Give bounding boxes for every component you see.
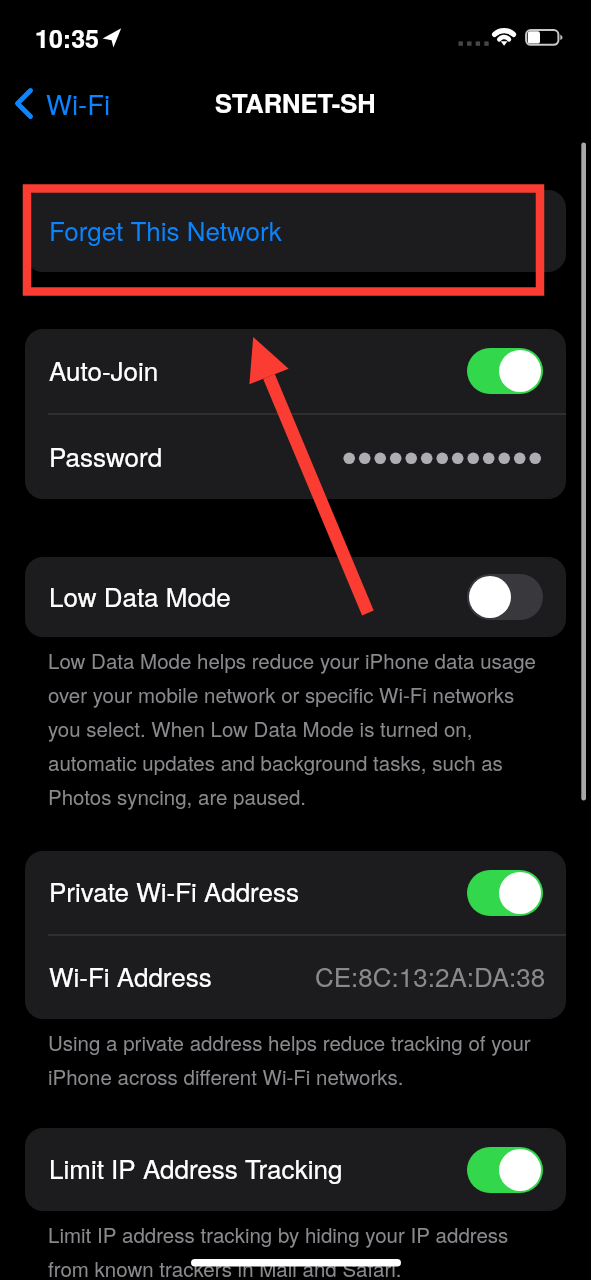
staticText: Forget This Network (49, 211, 282, 248)
staticText: STARNET-SH (215, 84, 376, 121)
button[interactable]: Password (25, 415, 566, 499)
button[interactable]: Auto-Join (25, 329, 566, 413)
staticText: Limit IP address tracking by hiding your… (48, 1219, 543, 1280)
staticText: Wi-Fi Address (49, 957, 212, 994)
staticText: Private Wi-Fi Address (49, 872, 299, 909)
button[interactable]: Forget This Network (25, 190, 566, 272)
button[interactable]: Private Wi-Fi Address toggle, on (467, 870, 543, 916)
button[interactable]: Low Data Mode toggle, off (467, 574, 543, 620)
button[interactable]: Private Wi-Fi Address (25, 851, 566, 934)
staticText: Password (49, 437, 163, 474)
staticText: 10:35 (35, 20, 99, 56)
button[interactable]: Limit IP Address Tracking (25, 1128, 566, 1211)
staticText: Low Data Mode (49, 577, 231, 614)
staticText: Wi-Fi (46, 83, 111, 122)
staticText: Using a private address helps reduce tra… (48, 1027, 543, 1090)
button[interactable]: Wi-Fi Address (25, 936, 566, 1019)
staticText: Auto-Join (49, 351, 159, 388)
button[interactable]: Low Data Mode (25, 557, 566, 637)
button[interactable]: Auto-Join toggle, on (467, 348, 543, 394)
button[interactable]: Limit IP Address Tracking toggle, on (467, 1147, 543, 1193)
staticText: Limit IP Address Tracking (49, 1149, 343, 1186)
staticText: CE:8C:13:2A:DA:38 (315, 957, 546, 994)
button[interactable]: Wi-Fi (0, 78, 123, 129)
staticText: Low Data Mode helps reduce your iPhone d… (48, 645, 543, 810)
